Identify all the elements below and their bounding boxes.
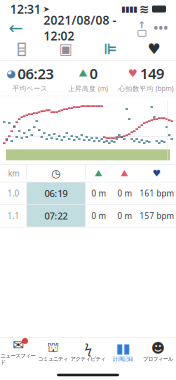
staticText: 06:19: [44, 187, 67, 199]
staticText: •••: [153, 20, 168, 36]
staticText: 0 m: [117, 210, 131, 221]
button[interactable]: ▮▮: [105, 338, 140, 366]
button[interactable]: Photo: [44, 38, 88, 60]
button[interactable]: 1.0: [0, 182, 175, 204]
staticText: ▮▮: [116, 341, 130, 356]
staticText: ニュースフィード: [0, 352, 35, 365]
staticText: ➤: [43, 4, 50, 14]
staticText: ♥: [147, 41, 160, 57]
button[interactable]: Save: [0, 38, 44, 60]
staticText: ⊫: [103, 41, 116, 57]
button[interactable]: ✉: [0, 338, 35, 366]
staticText: ↑: [138, 20, 146, 30]
staticText: ✉: [12, 337, 23, 352]
staticText: ◕: [6, 67, 15, 80]
staticText: 149: [140, 63, 164, 83]
button[interactable]: Like: [132, 38, 176, 60]
staticText: 計測記録: [113, 356, 133, 362]
staticText: 07:22: [44, 210, 67, 222]
button[interactable]: ⛫: [35, 338, 70, 366]
staticText: 心拍数平均 (bpm): [118, 84, 173, 93]
button[interactable]: ☻: [140, 338, 175, 366]
staticText: ⛰: [120, 169, 128, 178]
staticText: ◷: [51, 167, 60, 179]
staticText: 0 m: [91, 188, 105, 199]
staticText: km: [8, 168, 19, 179]
staticText: ⛰: [78, 68, 87, 78]
staticText: 上昇高度 (m): [68, 84, 108, 93]
staticText: ▣: [59, 41, 73, 57]
button[interactable]: 1.1: [0, 205, 175, 227]
button[interactable]: ϟ: [70, 338, 105, 366]
staticText: プロフィール: [143, 356, 173, 362]
button[interactable]: More options: [151, 18, 171, 38]
staticText: ♥: [128, 67, 138, 79]
staticText: 1.0: [7, 188, 19, 199]
staticText: 06:23: [17, 64, 53, 83]
staticText: ≋: [139, 2, 149, 16]
staticText: 平均ペース: [12, 84, 47, 92]
staticText: 157 bpm: [139, 210, 173, 221]
staticText: コミュニティ: [38, 356, 68, 362]
staticText: ☻: [151, 341, 165, 356]
staticText: アクティビティ: [70, 356, 105, 362]
button[interactable]: Stats: [88, 38, 132, 60]
staticText: 161 bpm: [139, 188, 173, 199]
staticText: ←: [8, 18, 23, 38]
staticText: 0 m: [117, 188, 131, 199]
staticText: ⛫: [47, 342, 59, 355]
staticText: 0: [89, 63, 97, 83]
staticText: ▮▮▮▮: [121, 4, 137, 14]
button[interactable]: Back: [5, 18, 27, 38]
staticText: ♥: [152, 168, 160, 179]
staticText: 1.1: [7, 210, 19, 221]
staticText: 12:31: [10, 1, 41, 17]
staticText: ⌸: [17, 39, 26, 59]
staticText: 0 m: [91, 210, 105, 221]
staticText: ⛰: [94, 169, 102, 178]
staticText: ϟ: [84, 339, 91, 357]
button[interactable]: Share: [133, 18, 151, 38]
staticText: 2021/08/08 - 12:02: [43, 12, 116, 44]
